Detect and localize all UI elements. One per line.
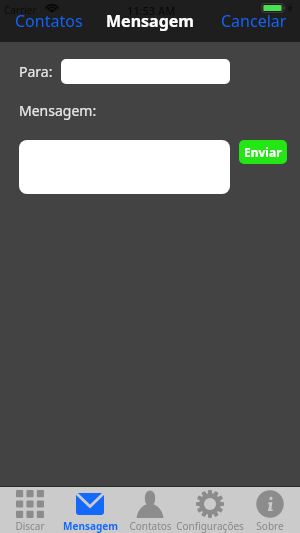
other: Mensagem xyxy=(76,490,104,518)
other: Configurações xyxy=(196,490,224,518)
button[interactable]: Contatos xyxy=(0,16,91,42)
button[interactable]: Cancelar xyxy=(213,16,300,42)
button[interactable]: Mensagem xyxy=(60,487,120,533)
staticText: Cancelar xyxy=(221,10,287,32)
button[interactable]: Contatos xyxy=(120,487,180,533)
button[interactable]: Discar xyxy=(0,487,60,533)
staticText: 11:53 AM xyxy=(127,3,176,18)
staticText: Mensagem: xyxy=(19,101,97,120)
button[interactable]: Enviar xyxy=(239,140,287,164)
other: Sobre xyxy=(256,490,284,518)
staticText: Discar xyxy=(15,519,45,533)
staticText: Configurações xyxy=(176,519,244,533)
staticText: Mensagem xyxy=(106,10,194,32)
other: Wi-Fi xyxy=(45,1,59,13)
button[interactable]: Configurações xyxy=(180,487,240,533)
staticText: Sobre xyxy=(256,519,284,533)
staticText: Enviar xyxy=(244,144,282,160)
button[interactable]: Mensagem, campo de texto xyxy=(19,140,230,194)
staticText: Para: xyxy=(19,62,53,81)
other: Battery charging xyxy=(262,2,298,14)
button[interactable]: Para, campo de destinatário xyxy=(61,59,230,84)
staticText: Carrier xyxy=(4,3,37,17)
staticText: Mensagem xyxy=(63,519,118,533)
staticText: Contatos xyxy=(15,10,83,32)
other: Discar xyxy=(16,490,44,518)
other: Contatos xyxy=(136,490,164,518)
staticText: Contatos xyxy=(129,519,172,533)
button[interactable]: Sobre xyxy=(240,487,300,533)
